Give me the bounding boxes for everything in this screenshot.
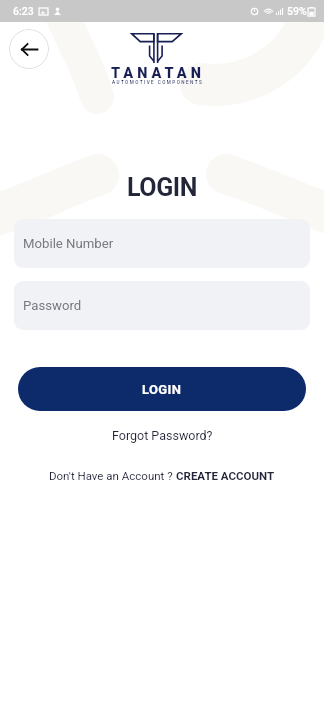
- button[interactable]: Mobile Number: [14, 219, 310, 268]
- staticText: LOGIN: [0, 173, 324, 202]
- staticText: Don't Have an Account ?: [49, 469, 176, 482]
- staticText: 59%: [287, 5, 307, 17]
- staticText: TANATAN: [111, 65, 205, 82]
- staticText: AUTOMOTIVE COMPONENTS: [112, 80, 204, 85]
- staticText: 6:23: [13, 5, 34, 17]
- button[interactable]: Forgot Password?: [102, 425, 223, 446]
- staticText: LOGIN: [142, 382, 182, 397]
- button[interactable]: Password: [14, 281, 310, 330]
- staticText: Password: [23, 298, 82, 313]
- staticText: Forgot Password?: [112, 428, 213, 443]
- button[interactable]: Back: [9, 29, 49, 69]
- button[interactable]: LOGIN: [18, 367, 306, 411]
- staticText: Mobile Number: [23, 236, 114, 251]
- button[interactable]: Don't Have an Account ?: [39, 466, 285, 485]
- staticText: CREATE ACCOUNT: [176, 469, 275, 482]
